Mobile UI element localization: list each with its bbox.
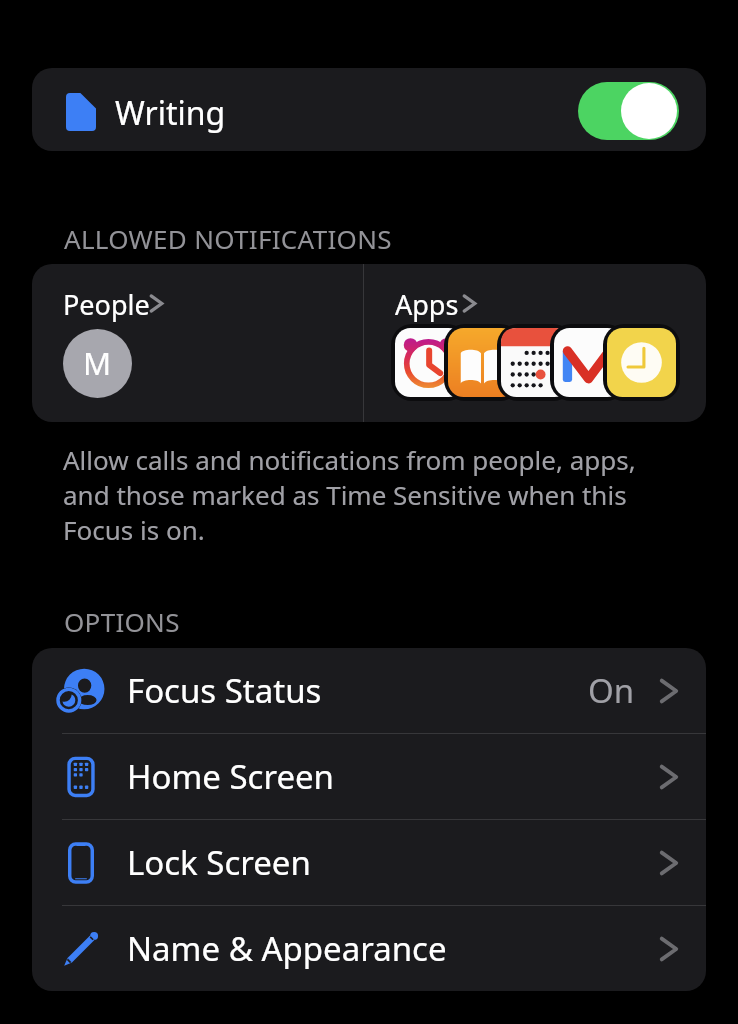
staticText: M xyxy=(83,342,112,384)
staticText: Name & Appearance xyxy=(127,926,447,971)
staticText: ALLOWED NOTIFICATIONS xyxy=(64,221,392,256)
button[interactable]: Lock Screen xyxy=(32,820,706,905)
button[interactable]: Writing xyxy=(32,68,706,151)
staticText: On xyxy=(588,668,635,713)
button[interactable]: Home Screen xyxy=(32,734,706,819)
button[interactable]: People xyxy=(32,264,363,422)
staticText: Lock Screen xyxy=(127,840,311,885)
staticText: People xyxy=(63,286,150,323)
button[interactable]: Focus toggle, on xyxy=(578,82,679,140)
button[interactable]: Apps xyxy=(364,264,706,422)
staticText: Home Screen xyxy=(127,754,335,799)
staticText: Allow calls and notifications from peopl… xyxy=(63,442,649,547)
button[interactable]: Focus Status xyxy=(32,648,706,733)
staticText: OPTIONS xyxy=(64,604,180,639)
staticText: Apps xyxy=(395,286,459,323)
staticText: Writing xyxy=(115,91,226,135)
button[interactable]: Name & Appearance xyxy=(32,906,706,991)
staticText: Focus Status xyxy=(127,668,322,713)
